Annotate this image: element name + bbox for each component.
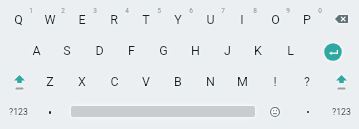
staticText: 1	[29, 7, 33, 15]
button[interactable]: E	[66, 4, 98, 34]
button[interactable]: Emoji	[259, 97, 291, 127]
staticText: L	[287, 43, 294, 58]
button[interactable]: H	[179, 35, 211, 65]
staticText: N	[206, 74, 215, 89]
button[interactable]: A	[20, 35, 52, 65]
button[interactable]: Z	[34, 66, 66, 96]
button[interactable]: J	[211, 35, 243, 65]
button[interactable]: L	[274, 35, 306, 65]
staticText: Z	[46, 74, 54, 89]
staticText: U	[206, 12, 215, 27]
button[interactable]	[292, 97, 324, 127]
staticText: ?123	[9, 107, 28, 117]
staticText: D	[95, 43, 104, 58]
staticText: A	[32, 43, 41, 58]
button[interactable]: Q	[2, 4, 34, 34]
staticText: G	[159, 43, 168, 58]
staticText: 4	[125, 7, 129, 15]
staticText: 0	[318, 7, 322, 15]
staticText: K	[254, 43, 262, 58]
staticText: 2	[61, 7, 65, 15]
button[interactable]	[34, 97, 66, 127]
staticText: Q	[14, 12, 23, 27]
button[interactable]: Shift	[325, 67, 357, 97]
button[interactable]: M	[226, 66, 258, 96]
staticText: ?123	[332, 107, 351, 117]
staticText: P	[303, 12, 311, 27]
button[interactable]: ?123	[323, 97, 359, 127]
button[interactable]: T	[130, 4, 162, 34]
button[interactable]: X	[66, 66, 98, 96]
staticText: R	[110, 12, 118, 27]
staticText: F	[128, 43, 135, 58]
staticText: S	[63, 43, 71, 58]
button[interactable]: S	[51, 35, 83, 65]
button[interactable]: Shift	[3, 67, 35, 97]
staticText: B	[174, 74, 182, 89]
button[interactable]: !	[259, 66, 291, 96]
staticText: E	[78, 12, 86, 27]
staticText: 5	[157, 7, 161, 15]
button[interactable]: F	[115, 35, 147, 65]
button[interactable]: G	[147, 35, 179, 65]
staticText: I	[240, 12, 244, 27]
staticText: V	[142, 74, 150, 89]
button[interactable]: W	[34, 4, 66, 34]
staticText: 6	[189, 7, 193, 15]
button[interactable]: ?	[291, 66, 323, 96]
button[interactable]: V	[130, 66, 162, 96]
staticText: !	[273, 74, 277, 89]
staticText: C	[110, 74, 119, 89]
staticText: X	[78, 74, 86, 89]
staticText: 7	[221, 7, 225, 15]
button[interactable]: N	[194, 66, 226, 96]
staticText: 3	[93, 7, 97, 15]
staticText: ?	[304, 74, 310, 89]
button[interactable]: B	[162, 66, 194, 96]
button[interactable]: P	[291, 4, 323, 34]
button[interactable]: R	[98, 4, 130, 34]
staticText: T	[142, 12, 150, 27]
button[interactable]: Space	[67, 96, 259, 126]
button[interactable]: D	[83, 35, 115, 65]
staticText: Y	[174, 12, 182, 27]
button[interactable]: K	[242, 35, 274, 65]
staticText: H	[191, 43, 200, 58]
button[interactable]: I	[226, 4, 258, 34]
button[interactable]: ?123	[2, 97, 34, 127]
staticText: W	[44, 12, 56, 27]
button[interactable]: Y	[162, 4, 194, 34]
staticText: 8	[253, 7, 257, 15]
staticText: O	[271, 12, 280, 27]
button[interactable]: Enter	[315, 37, 351, 67]
staticText: M	[237, 74, 248, 89]
button[interactable]: Backspace	[323, 4, 359, 34]
button[interactable]: U	[194, 4, 226, 34]
staticText: 9	[286, 7, 290, 15]
button[interactable]: O	[259, 4, 291, 34]
button[interactable]: C	[98, 66, 130, 96]
staticText: J	[224, 43, 231, 58]
